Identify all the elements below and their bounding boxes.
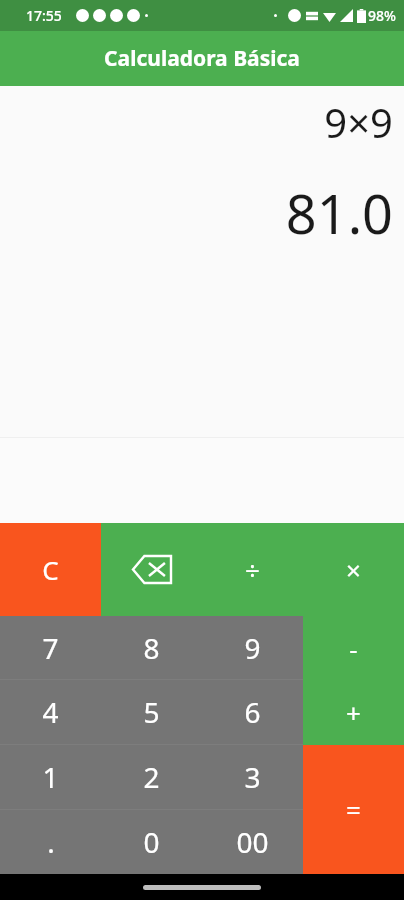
button[interactable]: ÷: [202, 523, 303, 616]
staticText: 0: [143, 823, 160, 861]
button[interactable]: =: [303, 745, 404, 874]
staticText: .: [47, 823, 55, 861]
staticText: 5: [143, 693, 160, 731]
button[interactable]: 5: [101, 680, 202, 744]
staticText: ÷: [245, 552, 260, 587]
button[interactable]: 3: [202, 745, 303, 809]
staticText: 6: [244, 693, 261, 731]
staticText: ×: [346, 552, 361, 587]
button[interactable]: 4: [0, 680, 101, 744]
staticText: 3: [244, 758, 261, 796]
button[interactable]: 9: [202, 616, 303, 679]
staticText: =: [346, 792, 361, 827]
staticText: 1: [42, 758, 59, 796]
staticText: 7: [42, 629, 59, 667]
button[interactable]: 2: [101, 745, 202, 809]
staticText: 8: [143, 629, 160, 667]
button[interactable]: +: [303, 680, 404, 745]
staticText: -: [349, 631, 358, 666]
staticText: +: [346, 695, 361, 730]
button[interactable]: 1: [0, 745, 101, 809]
staticText: 81.0: [285, 176, 393, 250]
button[interactable]: Backspace: [101, 523, 202, 616]
button[interactable]: 0: [101, 810, 202, 874]
button[interactable]: .: [0, 810, 101, 874]
staticText: 00: [236, 823, 269, 861]
staticText: 2: [143, 758, 160, 796]
button[interactable]: -: [303, 616, 404, 680]
button[interactable]: ×: [303, 523, 404, 616]
staticText: Calculadora Básica: [104, 44, 300, 73]
button[interactable]: 6: [202, 680, 303, 744]
staticText: 9×9: [324, 95, 393, 149]
button[interactable]: 7: [0, 616, 101, 679]
staticText: C: [42, 552, 59, 587]
button[interactable]: 8: [101, 616, 202, 679]
button[interactable]: 00: [202, 810, 303, 874]
staticText: 17:55: [26, 6, 62, 25]
button[interactable]: C: [0, 523, 101, 616]
staticText: 4: [42, 693, 59, 731]
staticText: 9: [244, 629, 261, 667]
staticText: 98%: [368, 6, 396, 25]
